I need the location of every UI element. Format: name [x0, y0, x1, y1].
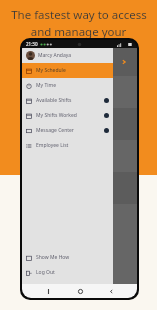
staticText: Show Me How: [36, 254, 70, 261]
button[interactable]: Available Shifts: [22, 93, 113, 108]
staticText: The fastest way to access: [11, 7, 147, 23]
button[interactable]: My Schedule: [22, 63, 113, 78]
button[interactable]: Back: [106, 286, 116, 296]
button[interactable]: Home: [75, 286, 85, 296]
button[interactable]: Message Center: [22, 123, 113, 138]
staticText: Employee List: [36, 142, 69, 149]
button[interactable]: My Shifts Worked: [22, 108, 113, 123]
staticText: Marcy Andaya: [38, 52, 72, 59]
staticText: Message Center: [36, 127, 74, 134]
button[interactable]: Employee List: [22, 138, 113, 153]
staticText: My Schedule: [36, 67, 66, 74]
staticText: Available Shifts: [36, 97, 72, 104]
button[interactable]: Log Out: [22, 265, 113, 280]
button[interactable]: Marcy Andaya: [22, 48, 113, 63]
button[interactable]: My Time: [22, 78, 113, 93]
staticText: My Shifts Worked: [36, 112, 77, 119]
staticText: 21:30: [26, 41, 38, 47]
staticText: My Time: [36, 82, 56, 89]
staticText: Log Out: [36, 269, 55, 276]
button[interactable]: Recents: [43, 286, 53, 296]
staticText: and manage your schedule: [6, 24, 151, 56]
button[interactable]: Show Me How: [22, 250, 113, 265]
